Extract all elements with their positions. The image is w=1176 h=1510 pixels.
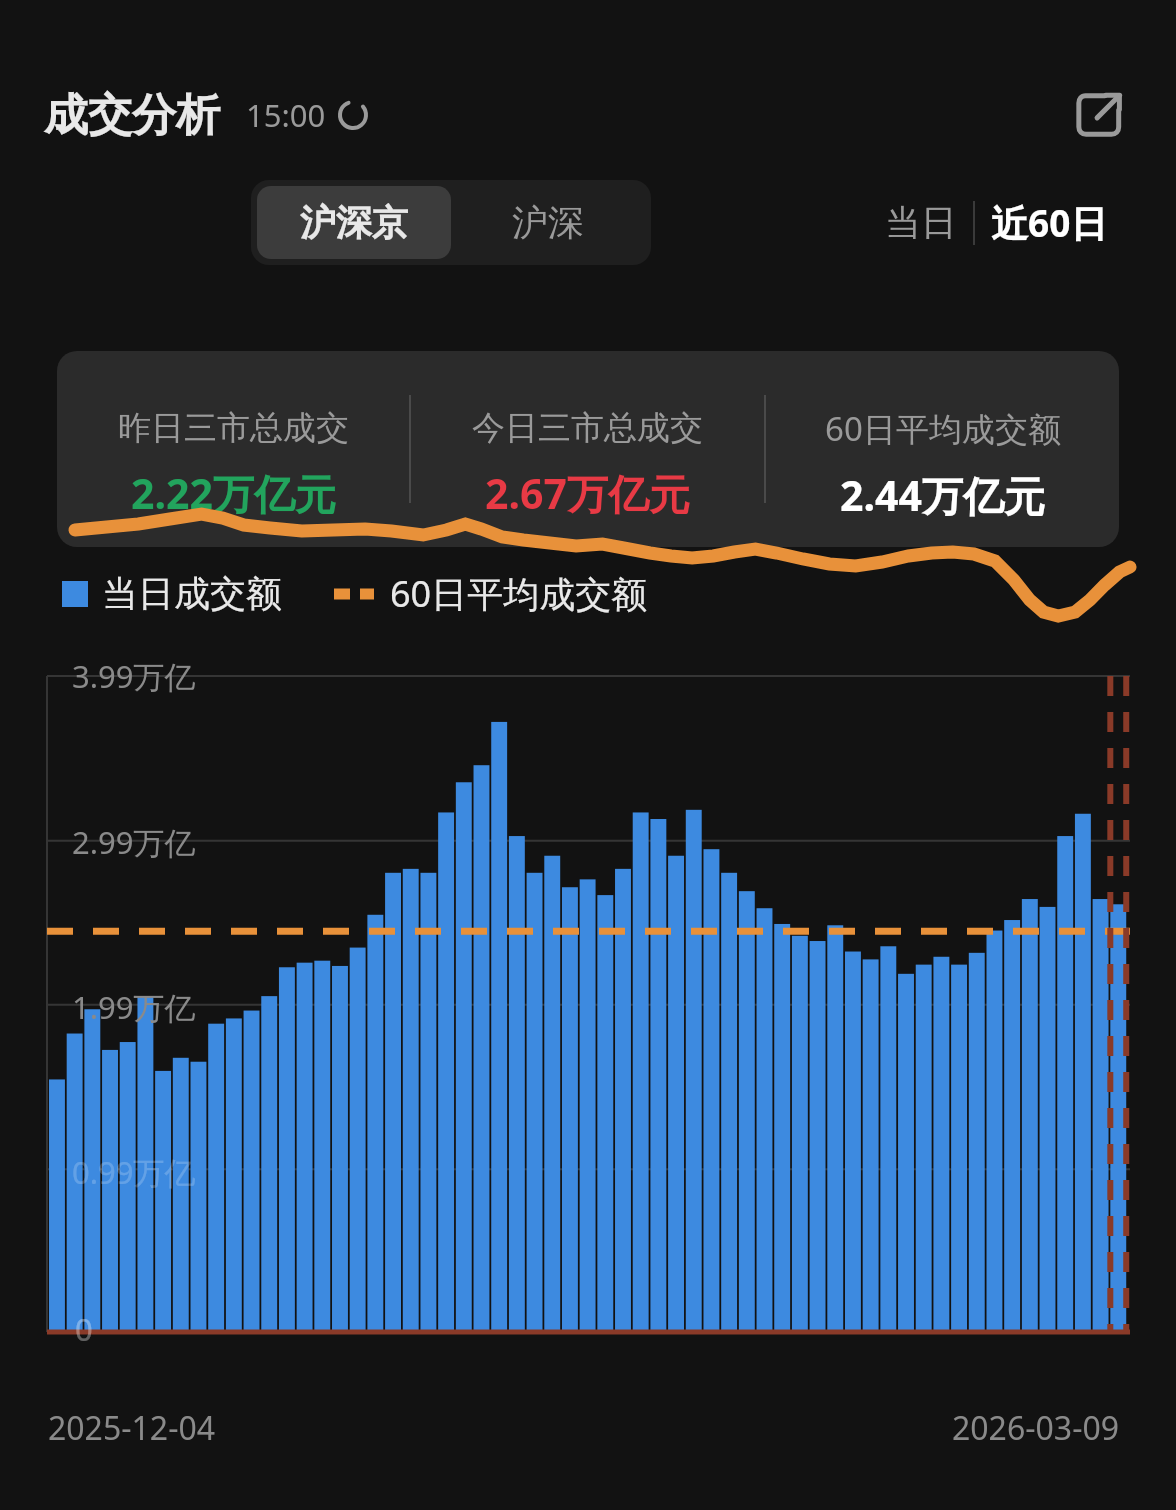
staticText: 昨日三市总成交	[118, 407, 349, 449]
staticText: 沪深京	[300, 200, 408, 245]
button[interactable]: Open in new window	[1068, 84, 1130, 146]
staticText: 0.99万亿	[72, 1151, 196, 1193]
button[interactable]: 近60日	[975, 185, 1124, 260]
staticText: 2026-03-09	[952, 1406, 1120, 1450]
button[interactable]: 60日平均成交额	[766, 376, 1119, 523]
button[interactable]: 沪深	[451, 186, 645, 259]
staticText: 15:00	[246, 94, 326, 136]
staticText: 2.99万亿	[72, 821, 196, 863]
staticText: 当日成交额	[102, 571, 282, 616]
staticText: 2025-12-04	[48, 1406, 216, 1450]
staticText: 2.67万亿元	[485, 465, 690, 521]
staticText: 近60日	[991, 197, 1108, 248]
staticText: 沪深	[512, 200, 584, 245]
staticText: 今日三市总成交	[472, 407, 703, 449]
button[interactable]: 今日三市总成交	[411, 377, 764, 521]
staticText: 成交分析	[44, 88, 220, 143]
button[interactable]: 当日	[869, 188, 973, 257]
staticText: 2.22万亿元	[131, 465, 336, 521]
staticText: 2.44万亿元	[840, 467, 1045, 523]
staticText: 1.99万亿	[72, 986, 196, 1028]
button[interactable]: 沪深京	[257, 186, 451, 259]
staticText: 当日	[885, 200, 957, 245]
staticText: 60日平均成交额	[825, 406, 1061, 451]
staticText: 0	[75, 1308, 93, 1350]
staticText: 3.99万亿	[72, 655, 196, 697]
staticText: 60日平均成交额	[390, 569, 648, 618]
button[interactable]: 昨日三市总成交	[57, 377, 409, 521]
